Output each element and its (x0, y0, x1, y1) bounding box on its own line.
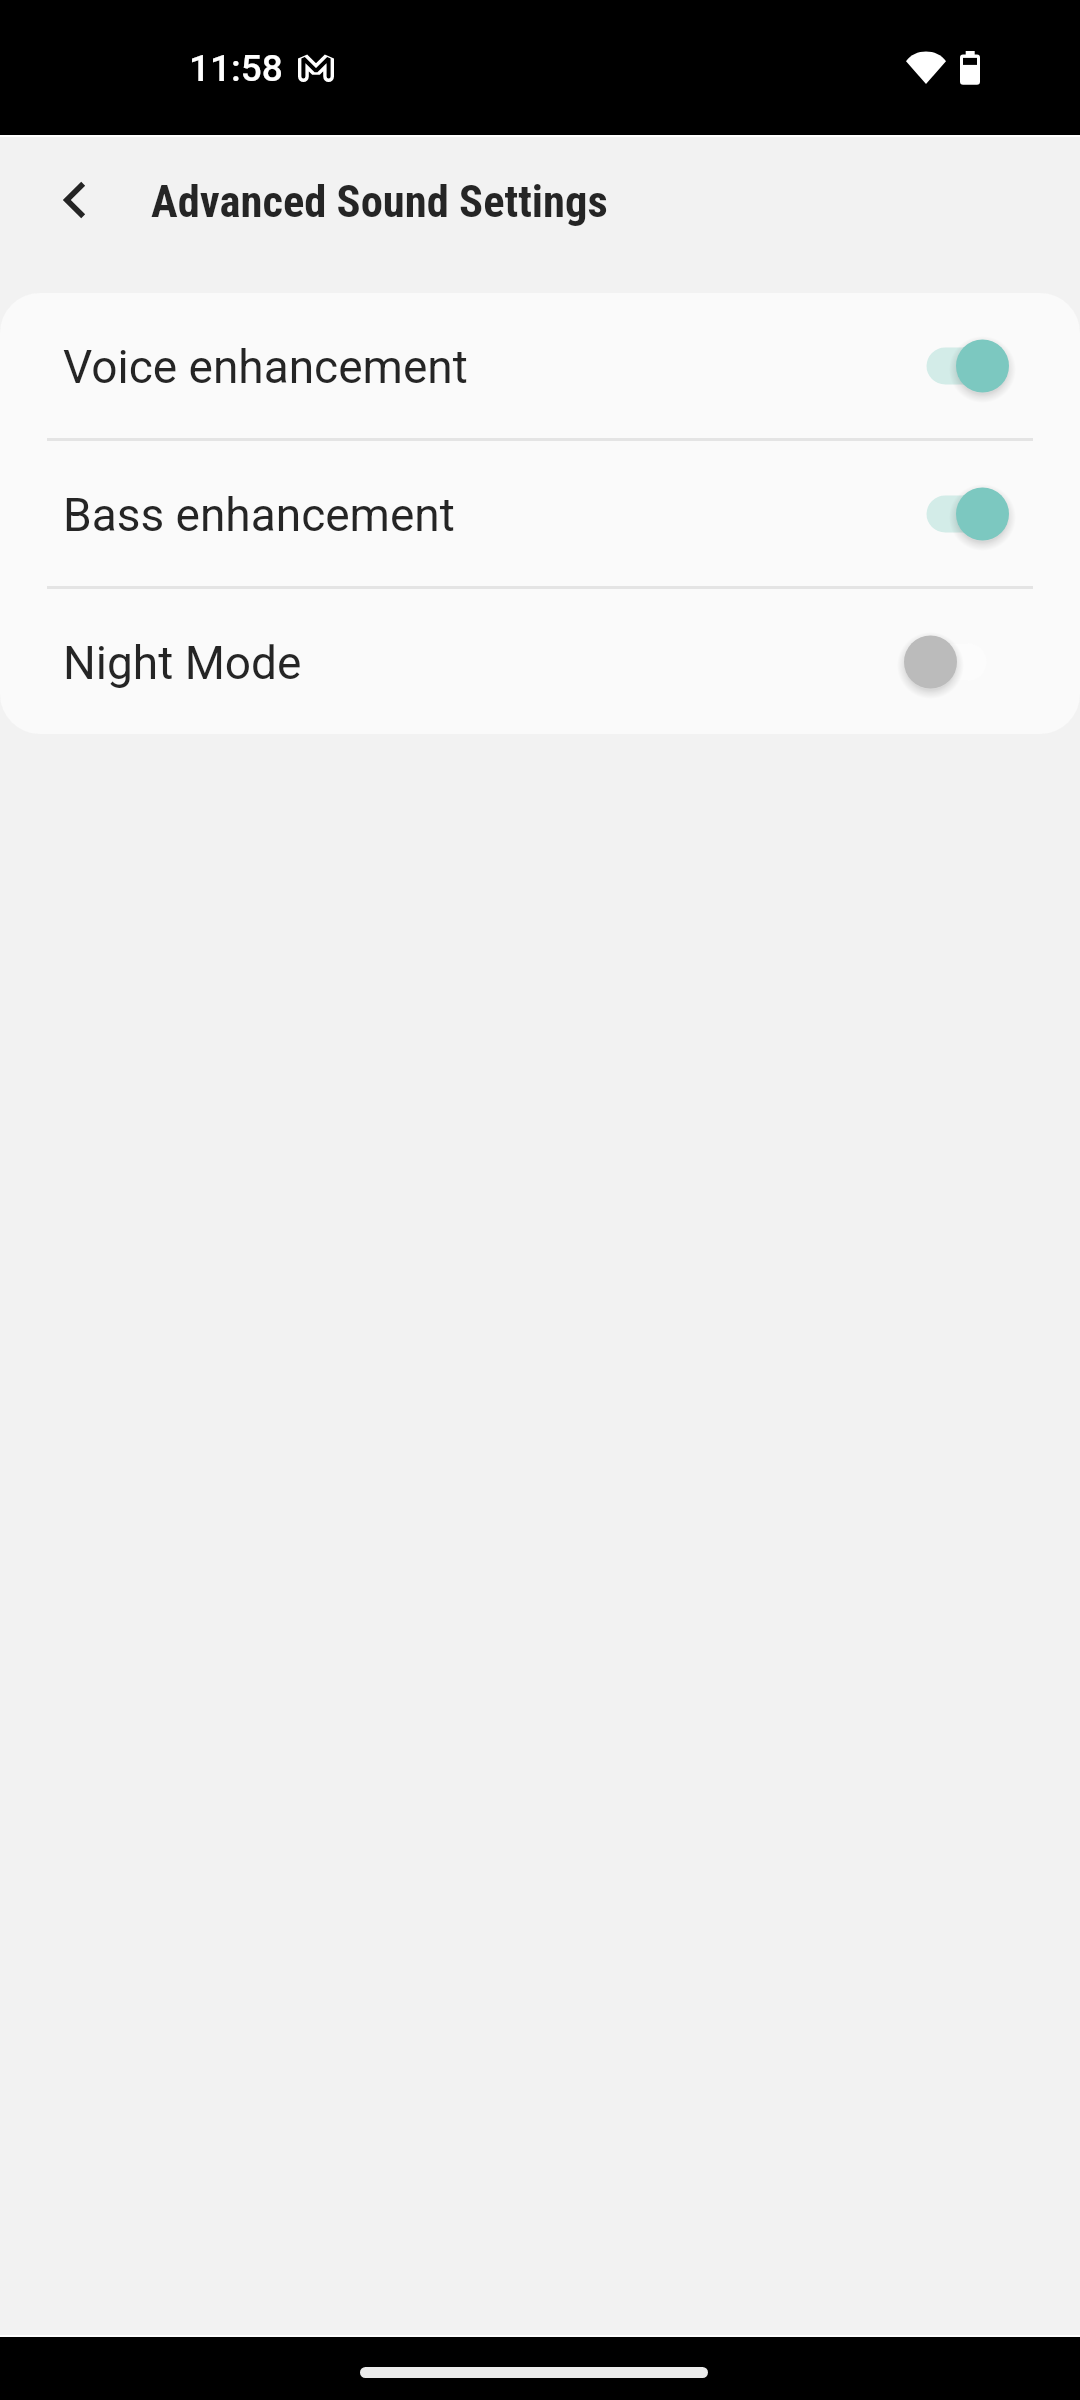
button[interactable]: Bass enhancement (0, 441, 1080, 586)
staticText: Night Mode (63, 636, 904, 690)
button[interactable]: Night Mode (0, 589, 1080, 734)
staticText: 11:58 (189, 47, 283, 90)
staticText: Advanced Sound Settings (151, 176, 608, 228)
button[interactable]: Voice enhancement (0, 293, 1080, 438)
button[interactable]: On (904, 337, 1009, 395)
button[interactable]: On (904, 485, 1009, 543)
button[interactable]: Off (904, 633, 1009, 691)
staticText: Bass enhancement (63, 488, 904, 542)
button[interactable]: Home (360, 2367, 708, 2378)
button[interactable]: Back (31, 156, 119, 244)
staticText: Voice enhancement (63, 340, 904, 394)
